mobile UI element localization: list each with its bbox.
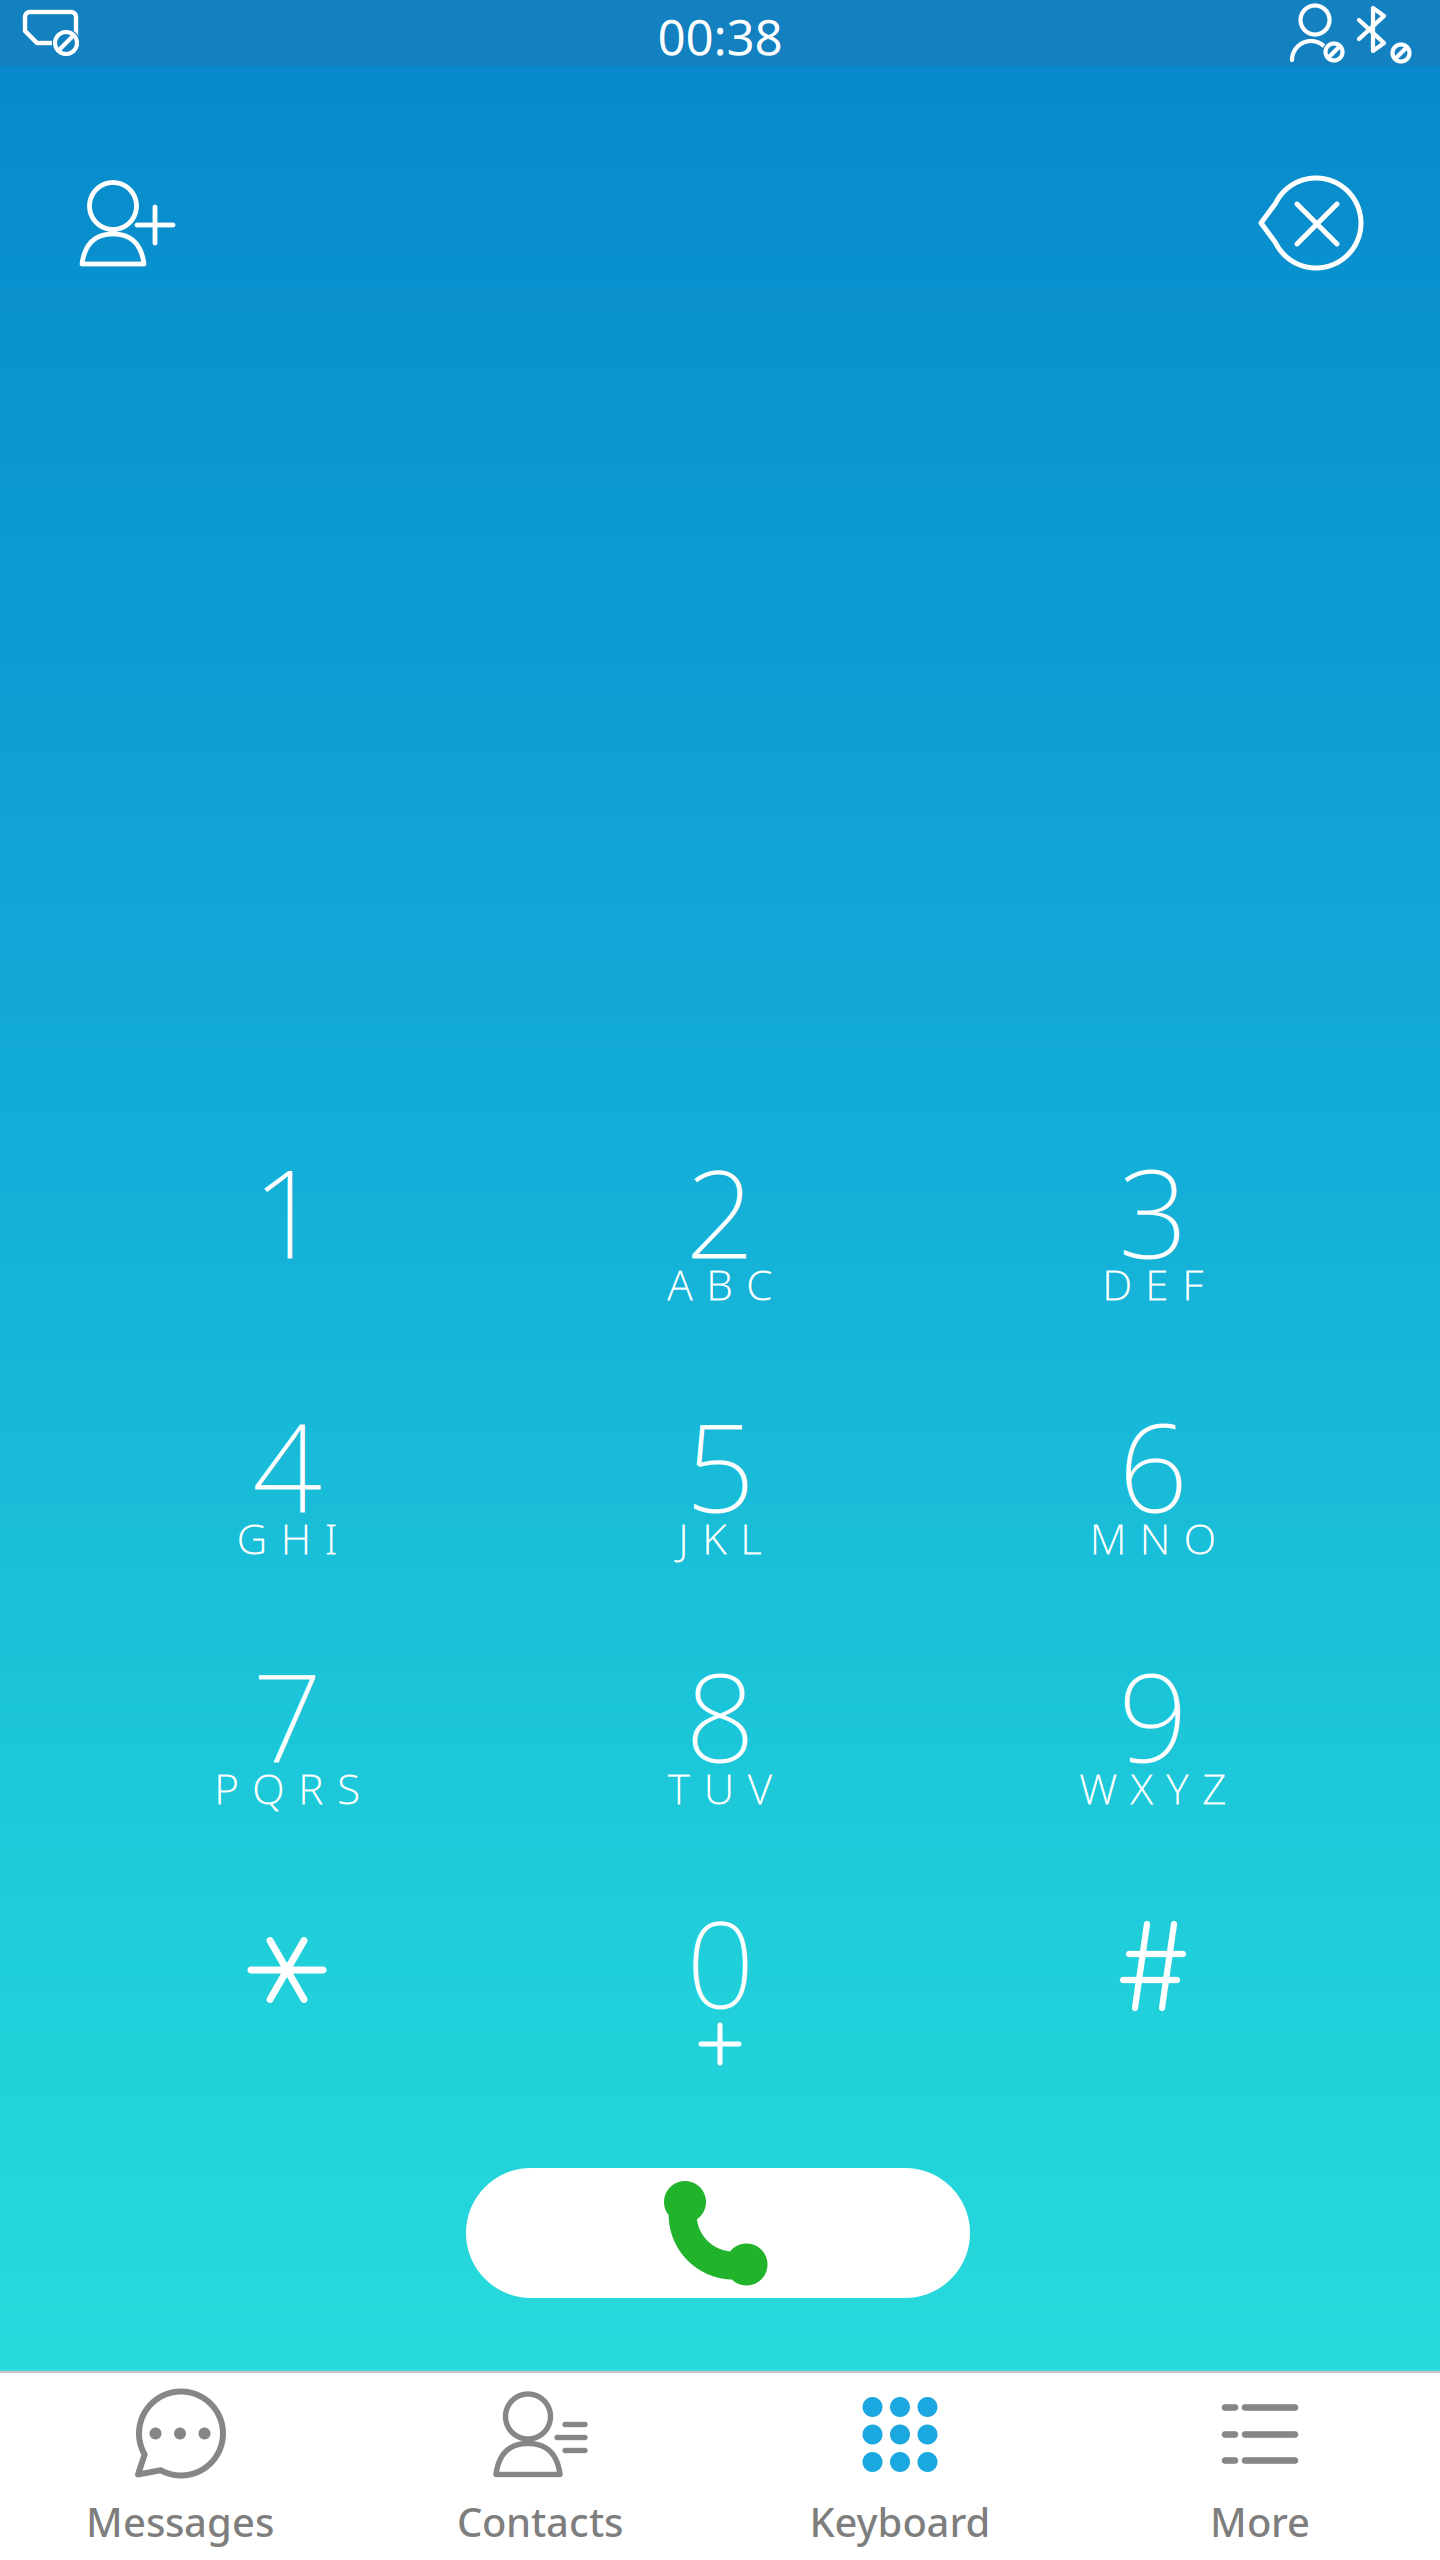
staticText: 1 xyxy=(252,1130,322,1292)
staticText: 3 xyxy=(1118,1130,1188,1292)
button[interactable]: 1 xyxy=(77,1121,497,1371)
staticText: 2 xyxy=(685,1130,755,1292)
staticText: More xyxy=(1210,2495,1310,2548)
staticText: 6 xyxy=(1118,1384,1188,1546)
button[interactable]: Keyboard xyxy=(720,2373,1080,2560)
staticText: DEF xyxy=(1102,1256,1204,1312)
staticText: GHI xyxy=(236,1510,337,1566)
button[interactable]: 6 xyxy=(943,1375,1363,1625)
button[interactable]: Delete xyxy=(1236,153,1386,293)
button[interactable]: Contacts xyxy=(360,2373,720,2560)
staticText: Contacts xyxy=(457,2495,623,2548)
button[interactable]: 9 xyxy=(943,1625,1363,1875)
staticText: Messages xyxy=(86,2495,274,2548)
button[interactable]: 7 xyxy=(77,1625,497,1875)
staticText: TUV xyxy=(667,1760,772,1816)
staticText: 7 xyxy=(252,1634,322,1796)
button[interactable]: 0 xyxy=(510,1866,930,2126)
button[interactable]: Pound xyxy=(943,1841,1363,2091)
button[interactable]: 2 xyxy=(510,1121,930,1371)
staticText: 5 xyxy=(685,1384,755,1546)
staticText: PQRS xyxy=(214,1760,360,1816)
button[interactable]: 3 xyxy=(943,1121,1363,1371)
button[interactable]: Messages xyxy=(0,2373,360,2560)
staticText: Keyboard xyxy=(809,2495,990,2548)
staticText: 4 xyxy=(252,1384,322,1546)
button[interactable]: 5 xyxy=(510,1375,930,1625)
staticText: WXYZ xyxy=(1079,1760,1227,1816)
button[interactable]: 8 xyxy=(510,1625,930,1875)
button[interactable]: Asterisk xyxy=(77,1845,497,2095)
staticText: 9 xyxy=(1118,1634,1188,1796)
button[interactable]: 4 xyxy=(77,1375,497,1625)
staticText: 0 xyxy=(686,1882,754,2042)
button[interactable]: More xyxy=(1080,2373,1440,2560)
staticText: MNO xyxy=(1089,1510,1216,1566)
button[interactable]: Call xyxy=(466,2168,970,2298)
button[interactable]: Add contact xyxy=(51,156,201,296)
staticText: JKL xyxy=(678,1510,762,1566)
staticText: ABC xyxy=(667,1256,773,1312)
staticText: 00:38 xyxy=(657,3,782,69)
staticText: 8 xyxy=(685,1634,755,1796)
